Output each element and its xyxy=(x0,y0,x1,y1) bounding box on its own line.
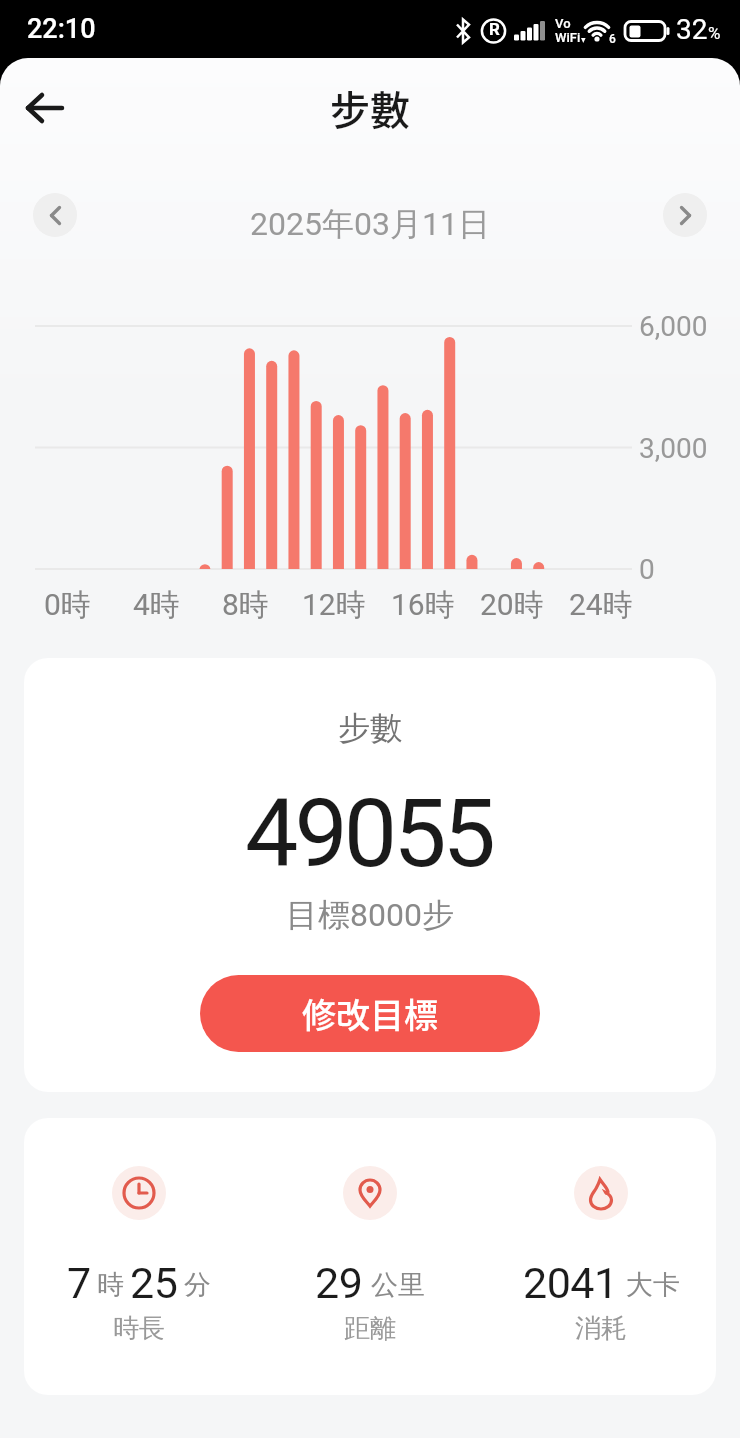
staticText: 時 xyxy=(97,1268,124,1302)
staticText: 32 xyxy=(676,13,708,46)
staticText: 8時 xyxy=(222,586,269,624)
staticText: 0時 xyxy=(44,586,91,624)
staticText: 2041 xyxy=(523,1258,618,1308)
staticText: Vo WiFi xyxy=(555,16,581,45)
button[interactable] xyxy=(663,193,707,237)
staticText: 公里 xyxy=(371,1268,425,1302)
staticText: 24時 xyxy=(569,586,633,624)
button[interactable] xyxy=(33,193,77,237)
staticText: 25 xyxy=(130,1258,178,1308)
staticText: 3,000 xyxy=(639,432,708,465)
staticText: 大卡 xyxy=(626,1268,680,1302)
staticText: 0 xyxy=(639,553,655,586)
staticText: 消耗 xyxy=(575,1312,627,1345)
staticText: 分 xyxy=(184,1268,211,1302)
staticText: R xyxy=(489,19,500,39)
staticText: 修改目標 xyxy=(302,989,438,1038)
staticText: 4時 xyxy=(133,586,180,624)
staticText: 步數 xyxy=(338,708,402,748)
staticText: 6,000 xyxy=(639,310,708,343)
staticText: % xyxy=(708,23,721,43)
staticText: 7 xyxy=(67,1258,91,1308)
staticText: 16時 xyxy=(391,586,455,624)
button[interactable]: 修改目標 xyxy=(200,975,540,1052)
staticText: 距離 xyxy=(344,1312,396,1345)
staticText: 2025年03月11日 xyxy=(250,204,490,244)
staticText: 步數 xyxy=(330,79,410,137)
staticText: 22:10 xyxy=(27,13,96,45)
staticText: 49055 xyxy=(245,778,492,889)
staticText: 12時 xyxy=(302,586,366,624)
staticText: 6 xyxy=(609,32,616,46)
staticText: 時長 xyxy=(113,1312,165,1345)
staticText: 20時 xyxy=(480,586,544,624)
staticText: 29 xyxy=(315,1258,363,1308)
staticText: 目標8000步 xyxy=(286,895,454,935)
button[interactable] xyxy=(14,88,76,128)
